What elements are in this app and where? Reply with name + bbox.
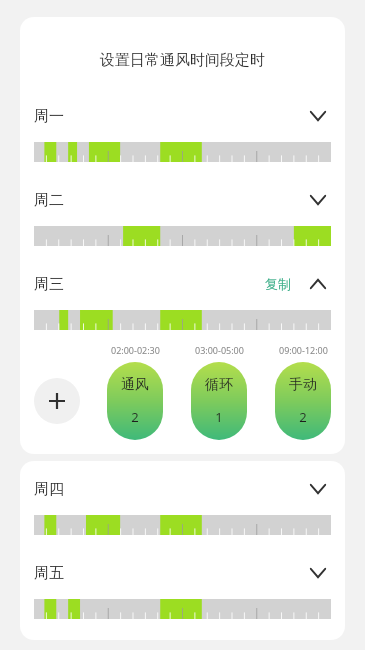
staticText: 循环 (205, 376, 233, 394)
button[interactable]: Collapse (305, 271, 331, 297)
button[interactable]: 复制 (261, 274, 295, 294)
staticText: 03:00-05:00 (195, 344, 244, 356)
staticText: 手动 (289, 376, 317, 394)
staticText: 复制 (265, 276, 291, 292)
staticText: 周二 (34, 191, 64, 210)
staticText: 2 (131, 408, 139, 426)
staticText: 09:00-12:00 (279, 344, 328, 356)
button[interactable]: Expand (305, 103, 331, 129)
button[interactable]: 通风 (107, 362, 163, 440)
button[interactable]: 手动 (275, 362, 331, 440)
staticText: 周四 (34, 480, 64, 499)
button[interactable]: Expand (305, 560, 331, 586)
staticText: 02:00-02:30 (111, 344, 160, 356)
button[interactable]: Add schedule (34, 378, 80, 424)
button[interactable]: Expand (305, 187, 331, 213)
staticText: 设置日常通风时间段定时 (100, 51, 265, 70)
staticText: 周一 (34, 107, 64, 126)
button[interactable]: 周五 (34, 553, 331, 593)
button[interactable]: 周二 (34, 180, 331, 220)
staticText: 1 (215, 408, 223, 426)
button[interactable]: 周四 (34, 469, 331, 509)
button[interactable]: Expand (305, 476, 331, 502)
button[interactable]: 周一 (34, 96, 331, 136)
button[interactable]: 周三 (34, 264, 331, 304)
staticText: 周五 (34, 564, 64, 583)
staticText: 通风 (121, 376, 149, 394)
staticText: 2 (299, 408, 307, 426)
button[interactable]: 循环 (191, 362, 247, 440)
staticText: 周三 (34, 275, 64, 294)
